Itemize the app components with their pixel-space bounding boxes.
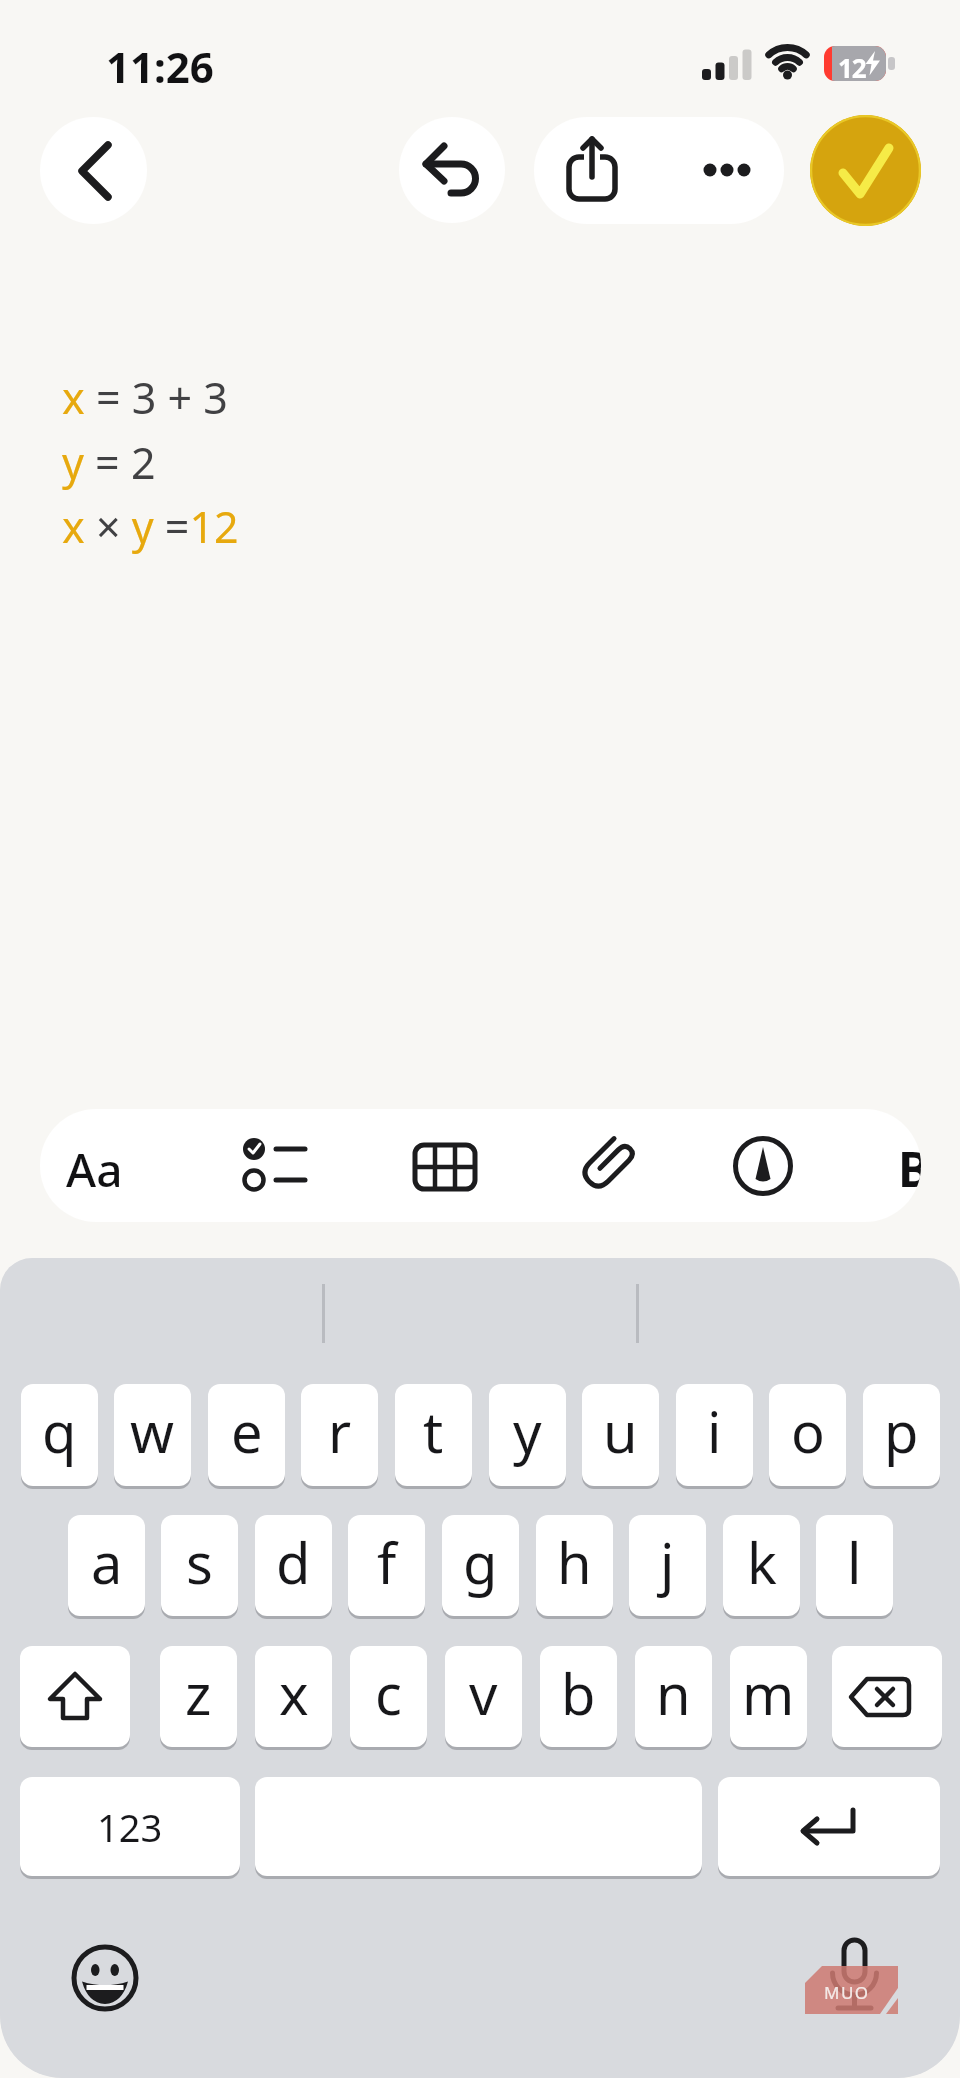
staticText: w	[130, 1393, 175, 1469]
staticText: v	[469, 1655, 498, 1731]
button[interactable]	[810, 115, 921, 226]
button[interactable]: b	[540, 1646, 617, 1747]
button[interactable]: f	[348, 1515, 425, 1616]
button[interactable]: q	[21, 1384, 98, 1486]
staticText: e	[231, 1393, 263, 1469]
staticText: u	[603, 1393, 638, 1469]
button[interactable]	[832, 1646, 942, 1747]
staticText: MUO	[824, 1981, 870, 2004]
button[interactable]: m	[730, 1646, 807, 1747]
button[interactable]: l	[816, 1515, 893, 1616]
button[interactable]: d	[255, 1515, 332, 1616]
button[interactable]: t	[395, 1384, 472, 1486]
staticText: m	[742, 1655, 795, 1731]
button[interactable]	[40, 117, 147, 224]
button[interactable]: y	[489, 1384, 566, 1486]
staticText: q	[42, 1393, 77, 1469]
staticText: j	[660, 1524, 675, 1600]
button[interactable]: B	[870, 1121, 921, 1211]
button[interactable]	[718, 1777, 940, 1876]
staticText: f	[377, 1524, 397, 1600]
staticText: z	[185, 1655, 212, 1731]
staticText: l	[847, 1524, 862, 1600]
staticText: k	[747, 1524, 777, 1600]
staticText: Aa	[66, 1138, 123, 1201]
button[interactable]	[52, 1120, 152, 1210]
button[interactable]: g	[442, 1515, 519, 1616]
button[interactable]: o	[769, 1384, 846, 1486]
staticText: t	[423, 1393, 444, 1469]
staticText: y = 2	[62, 433, 156, 492]
staticText: i	[707, 1393, 722, 1469]
button[interactable]: x	[255, 1646, 332, 1747]
button[interactable]: k	[723, 1515, 800, 1616]
staticText: h	[557, 1524, 592, 1600]
staticText: p	[884, 1393, 919, 1469]
button[interactable]: s	[161, 1515, 238, 1616]
staticText: b	[561, 1655, 596, 1731]
staticText: o	[791, 1393, 825, 1469]
button[interactable]	[399, 117, 505, 223]
button[interactable]	[534, 117, 659, 224]
button[interactable]: u	[582, 1384, 659, 1486]
staticText: a	[91, 1524, 123, 1600]
staticText: 12	[838, 50, 866, 85]
button[interactable]: n	[635, 1646, 712, 1747]
button[interactable]	[726, 1120, 810, 1210]
button[interactable]: e	[208, 1384, 285, 1486]
button[interactable]: i	[676, 1384, 753, 1486]
button[interactable]: MUO	[790, 1925, 910, 2020]
staticText: x = 3 + 3	[62, 368, 228, 427]
staticText: x × y =12	[62, 497, 239, 556]
button[interactable]	[226, 1120, 318, 1210]
button[interactable]	[659, 117, 784, 224]
button[interactable]: 123	[20, 1777, 240, 1876]
button[interactable]: w	[114, 1384, 191, 1486]
button[interactable]: p	[863, 1384, 940, 1486]
staticText: d	[276, 1524, 311, 1600]
button[interactable]	[570, 1120, 654, 1210]
staticText: x	[279, 1655, 309, 1731]
button[interactable]	[400, 1120, 492, 1210]
staticText: r	[328, 1393, 352, 1469]
staticText: c	[375, 1655, 402, 1731]
button[interactable]: r	[301, 1384, 378, 1486]
button[interactable]: z	[160, 1646, 237, 1747]
button[interactable]: a	[68, 1515, 145, 1616]
staticText: 11:26	[106, 38, 214, 95]
button[interactable]: h	[536, 1515, 613, 1616]
button[interactable]	[20, 1646, 130, 1747]
staticText: s	[186, 1524, 213, 1600]
staticText: g	[463, 1524, 498, 1600]
button[interactable]: c	[350, 1646, 427, 1747]
staticText: B	[898, 1136, 921, 1201]
button[interactable]: v	[445, 1646, 522, 1747]
button[interactable]	[70, 1943, 140, 2013]
staticText: 123	[97, 1801, 163, 1853]
staticText: y	[513, 1393, 542, 1469]
staticText: n	[656, 1655, 691, 1731]
button[interactable]: j	[629, 1515, 706, 1616]
